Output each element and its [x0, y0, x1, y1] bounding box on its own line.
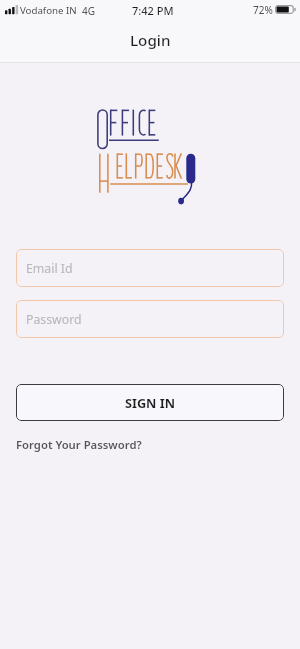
- staticText: 4G: [82, 4, 95, 18]
- staticText: Password: [26, 311, 82, 328]
- staticText: Vodafone IN: [20, 4, 77, 17]
- staticText: Forgot Your Password?: [16, 437, 142, 452]
- button[interactable]: Password: [16, 300, 284, 338]
- button[interactable]: SIGN IN: [16, 384, 284, 421]
- button[interactable]: Email Id: [16, 249, 284, 287]
- staticText: Email Id: [26, 260, 73, 277]
- staticText: 72%: [253, 3, 273, 17]
- button[interactable]: Forgot Your Password?: [16, 437, 142, 452]
- staticText: Login: [130, 30, 171, 51]
- staticText: SIGN IN: [125, 394, 175, 411]
- staticText: 7:42 PM: [132, 3, 174, 18]
